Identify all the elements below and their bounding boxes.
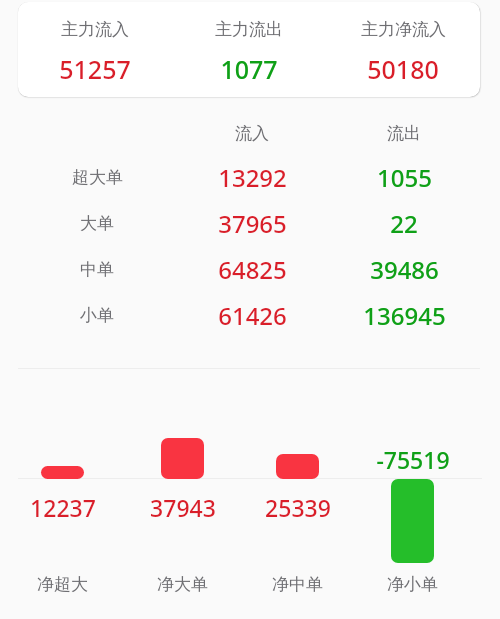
button[interactable]: 大单 (0, 200, 500, 246)
staticText: 39486 (370, 253, 439, 286)
staticText: 61426 (218, 299, 287, 332)
staticText: 1077 (220, 52, 278, 86)
staticText: 37965 (218, 207, 287, 240)
button[interactable]: 12237 (0, 400, 125, 619)
button[interactable]: -75519 (355, 400, 470, 619)
staticText: 流入 (235, 123, 269, 144)
staticText: 净超大 (37, 574, 88, 595)
button[interactable]: 主力流入 (18, 19, 172, 86)
staticText: 主力净流入 (361, 19, 446, 40)
staticText: 37943 (150, 492, 216, 523)
staticText: 超大单 (72, 167, 123, 188)
button[interactable]: 25339 (240, 400, 355, 619)
staticText: 13292 (218, 161, 287, 194)
staticText: 51257 (59, 52, 131, 86)
staticText: 净大单 (157, 574, 208, 595)
button[interactable]: 小单 (0, 292, 500, 338)
staticText: 净中单 (272, 574, 323, 595)
staticText: 主力流入 (61, 19, 129, 40)
button[interactable]: 中单 (0, 246, 500, 292)
staticText: 50180 (367, 52, 439, 86)
staticText: 64825 (218, 253, 287, 286)
button[interactable]: 超大单 (0, 154, 500, 200)
button[interactable]: 37943 (125, 400, 240, 619)
staticText: 136945 (363, 299, 446, 332)
staticText: 小单 (80, 305, 114, 326)
staticText: 主力流出 (215, 19, 283, 40)
staticText: 1055 (377, 161, 432, 194)
button[interactable]: 主力流出 (172, 19, 326, 86)
staticText: 大单 (80, 213, 114, 234)
staticText: -75519 (376, 444, 450, 475)
button[interactable]: 主力净流入 (326, 19, 480, 86)
staticText: 流出 (387, 123, 421, 144)
staticText: 中单 (80, 259, 114, 280)
staticText: 净小单 (387, 574, 438, 595)
staticText: 25339 (265, 492, 331, 523)
staticText: 12237 (30, 492, 96, 523)
staticText: 22 (390, 207, 418, 240)
